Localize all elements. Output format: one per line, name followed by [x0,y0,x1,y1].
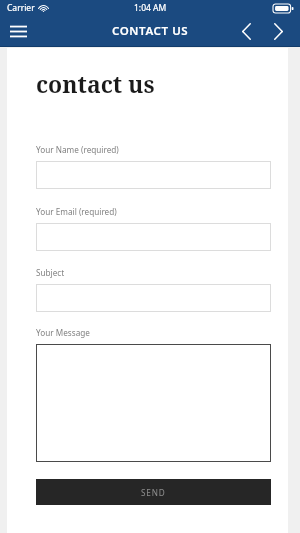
staticText: Your Name (required) [36,144,119,155]
button[interactable] [36,284,271,312]
staticText: Subject [36,267,65,278]
staticText: contact us [36,68,155,99]
staticText: 1:04 AM [134,2,167,14]
button[interactable] [36,344,271,462]
button[interactable] [36,223,271,251]
staticText: CONTACT US [112,23,189,39]
staticText: Your Message [36,327,90,338]
button[interactable]: SEND [36,479,271,505]
button[interactable]: Next [262,16,294,46]
button[interactable]: Menu [0,16,36,46]
button[interactable] [36,161,271,189]
staticText: Your Email (required) [36,206,117,217]
staticText: SEND [141,487,166,498]
button[interactable]: Previous [230,16,262,46]
staticText: Carrier [7,2,35,14]
